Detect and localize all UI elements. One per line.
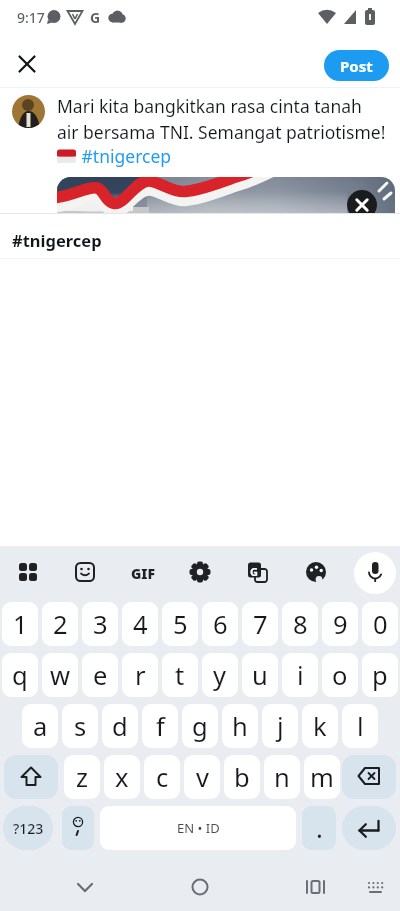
button[interactable]: q bbox=[2, 653, 38, 697]
button[interactable]: 6 bbox=[202, 602, 238, 646]
button[interactable]: p bbox=[362, 653, 398, 697]
staticText: G bbox=[90, 8, 101, 27]
staticText: v bbox=[196, 760, 209, 795]
button[interactable]: y bbox=[202, 653, 238, 697]
button[interactable] bbox=[294, 550, 338, 594]
staticText: ?123 bbox=[13, 819, 44, 838]
staticText: G bbox=[250, 564, 258, 579]
staticText: c bbox=[156, 760, 169, 795]
button[interactable]: Post bbox=[324, 50, 389, 81]
staticText: GIF bbox=[131, 564, 156, 583]
button[interactable]: o bbox=[322, 653, 358, 697]
staticText: 9 bbox=[333, 607, 348, 642]
staticText: h bbox=[232, 709, 248, 744]
staticText: n bbox=[274, 760, 290, 795]
staticText: r bbox=[135, 658, 146, 693]
button[interactable]: k bbox=[302, 704, 338, 748]
button[interactable]: w bbox=[42, 653, 78, 697]
button[interactable]: 4 bbox=[122, 602, 158, 646]
staticText: #tnigercep bbox=[77, 144, 172, 168]
button[interactable]: 5 bbox=[162, 602, 198, 646]
button[interactable]: r bbox=[122, 653, 158, 697]
button[interactable]: i bbox=[282, 653, 318, 697]
button[interactable] bbox=[63, 867, 107, 907]
staticText: 1 bbox=[13, 607, 28, 642]
button[interactable] bbox=[4, 755, 58, 799]
button[interactable]: ?123 bbox=[3, 806, 53, 850]
button[interactable] bbox=[236, 550, 280, 594]
button[interactable]: v bbox=[184, 755, 220, 799]
button[interactable] bbox=[293, 867, 337, 907]
button[interactable]: s bbox=[62, 704, 98, 748]
staticText: g bbox=[192, 709, 208, 744]
button[interactable] bbox=[353, 867, 397, 907]
button[interactable]: 1 bbox=[2, 602, 38, 646]
button[interactable] bbox=[63, 550, 107, 594]
staticText: 6 bbox=[213, 607, 228, 642]
staticText: Post bbox=[340, 56, 373, 76]
staticText: m bbox=[310, 760, 334, 795]
button[interactable]: n bbox=[264, 755, 300, 799]
staticText: j bbox=[277, 709, 284, 744]
staticText: w bbox=[50, 658, 71, 693]
staticText: o bbox=[332, 658, 348, 693]
button[interactable]: m bbox=[304, 755, 340, 799]
staticText: s bbox=[74, 709, 87, 744]
staticText: 0 bbox=[373, 607, 388, 642]
button[interactable] bbox=[62, 806, 94, 850]
button[interactable]: 3 bbox=[82, 602, 118, 646]
button[interactable] bbox=[342, 755, 396, 799]
button[interactable] bbox=[6, 550, 50, 594]
button[interactable] bbox=[121, 550, 165, 594]
button[interactable]: h bbox=[222, 704, 258, 748]
button[interactable]: f bbox=[142, 704, 178, 748]
button[interactable]: g bbox=[182, 704, 218, 748]
button[interactable]: l bbox=[342, 704, 378, 748]
staticText: 8 bbox=[293, 607, 308, 642]
staticText: EN • ID bbox=[177, 819, 220, 837]
button[interactable]: u bbox=[242, 653, 278, 697]
staticText: 4 bbox=[133, 607, 148, 642]
staticText: e bbox=[93, 658, 108, 693]
staticText: u bbox=[252, 658, 268, 693]
staticText: i bbox=[297, 658, 304, 693]
button[interactable] bbox=[178, 867, 222, 907]
staticText: b bbox=[234, 760, 250, 795]
button[interactable]: EN • ID bbox=[100, 806, 296, 850]
button[interactable] bbox=[347, 190, 377, 213]
button[interactable]: z bbox=[64, 755, 100, 799]
button[interactable]: j bbox=[262, 704, 298, 748]
button[interactable]: t bbox=[162, 653, 198, 697]
staticText: f bbox=[156, 709, 165, 744]
button[interactable]: b bbox=[224, 755, 260, 799]
button[interactable] bbox=[11, 44, 43, 76]
staticText: Mari kita bangkitkan rasa cinta tanah ai… bbox=[57, 94, 386, 144]
staticText: a bbox=[33, 709, 48, 744]
button[interactable]: 7 bbox=[242, 602, 278, 646]
staticText: k bbox=[313, 709, 327, 744]
button[interactable]: e bbox=[82, 653, 118, 697]
staticText: p bbox=[372, 658, 388, 693]
button[interactable]: d bbox=[102, 704, 138, 748]
button[interactable] bbox=[354, 552, 396, 594]
staticText: 7 bbox=[253, 607, 268, 642]
button[interactable]: 0 bbox=[362, 602, 398, 646]
button[interactable]: 2 bbox=[42, 602, 78, 646]
staticText: #tnigercep bbox=[12, 229, 102, 251]
staticText: x bbox=[115, 760, 129, 795]
button[interactable]: a bbox=[22, 704, 58, 748]
staticText: t bbox=[175, 658, 185, 693]
staticText: d bbox=[112, 709, 128, 744]
button[interactable]: c bbox=[144, 755, 180, 799]
staticText: y bbox=[213, 658, 227, 693]
button[interactable]: #tnigercep bbox=[0, 214, 400, 258]
button[interactable]: . bbox=[302, 806, 336, 850]
staticText: q bbox=[12, 658, 28, 693]
button[interactable]: 9 bbox=[322, 602, 358, 646]
button[interactable] bbox=[342, 806, 396, 850]
staticText: 3 bbox=[93, 607, 108, 642]
button[interactable] bbox=[57, 177, 395, 213]
button[interactable]: 8 bbox=[282, 602, 318, 646]
button[interactable] bbox=[178, 550, 222, 594]
button[interactable]: x bbox=[104, 755, 140, 799]
